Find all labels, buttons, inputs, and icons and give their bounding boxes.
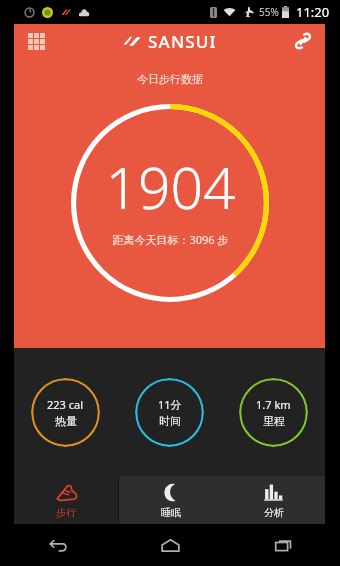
button[interactable]: 步行 (14, 476, 118, 524)
button[interactable]: 1.7 km (239, 378, 308, 447)
staticText: 里程 (263, 414, 285, 428)
staticText: 11分 (158, 397, 182, 412)
staticText: 1.7 km (256, 397, 291, 412)
button[interactable]: 223 cal (31, 378, 100, 447)
staticText: 11:20 (296, 3, 330, 21)
button[interactable]: 11分 (135, 378, 204, 447)
staticText: 1904 (105, 148, 236, 226)
staticText: 睡眠 (161, 506, 181, 519)
staticText: 时间 (159, 414, 181, 428)
button[interactable]: Recent apps (227, 524, 340, 566)
button[interactable]: 睡眠 (119, 476, 222, 524)
staticText: 223 cal (47, 397, 84, 412)
staticText: 步行 (56, 506, 76, 519)
button[interactable]: Home (114, 524, 227, 566)
button[interactable]: 分析 (222, 476, 325, 524)
button[interactable]: Link device (289, 27, 317, 55)
staticText: 今日步行数据 (137, 72, 203, 86)
staticText: 距离今天目标：3096 步 (112, 232, 229, 247)
staticText: 热量 (55, 414, 77, 428)
staticText: 55% (259, 5, 279, 19)
staticText: SANSUI (148, 30, 217, 53)
staticText: 分析 (264, 506, 284, 519)
button[interactable]: Menu (22, 27, 50, 55)
button[interactable]: Back (0, 524, 114, 566)
